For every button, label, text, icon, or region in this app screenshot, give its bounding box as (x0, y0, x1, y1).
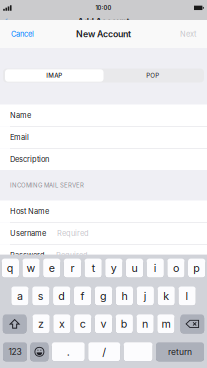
staticText: New Account (76, 29, 131, 39)
staticText: 123 (8, 347, 21, 357)
staticText: e (49, 262, 55, 274)
button[interactable]: b (116, 314, 133, 334)
button[interactable]: z (32, 314, 50, 334)
staticText: p (193, 262, 200, 274)
button[interactable]: q (2, 259, 19, 279)
button[interactable]: / (88, 342, 120, 362)
staticText: m (161, 317, 170, 330)
button[interactable]: Delete (181, 314, 204, 334)
staticText: c (80, 317, 86, 330)
button[interactable]: Cancel (0, 20, 42, 48)
button[interactable]: m (157, 314, 174, 334)
staticText: w (26, 262, 35, 274)
button[interactable]: w (22, 259, 40, 279)
button[interactable]: e (43, 259, 60, 279)
staticText: r (70, 262, 74, 274)
staticText: q (7, 262, 14, 274)
button[interactable]: Name (0, 104, 207, 126)
button[interactable]: Shift (3, 314, 26, 334)
staticText: IMAP (46, 72, 62, 79)
staticText: i (154, 262, 157, 274)
button[interactable]: Host Name (0, 200, 207, 222)
button[interactable]: p (188, 259, 205, 279)
staticText: . (67, 345, 70, 358)
button[interactable]: l (178, 286, 196, 307)
staticText: f (81, 289, 85, 302)
staticText: g (100, 289, 107, 302)
staticText: Name (10, 111, 31, 120)
staticText: Host Name (10, 207, 49, 216)
button[interactable]: Username (0, 222, 207, 244)
button[interactable]: v (95, 314, 112, 334)
staticText: t (92, 262, 95, 274)
button[interactable]: n (136, 314, 154, 334)
button[interactable]: k (158, 286, 175, 307)
button[interactable]: Emoji (30, 342, 48, 362)
staticText: z (38, 317, 44, 330)
button[interactable]: . (52, 342, 85, 362)
staticText: POP (146, 72, 159, 79)
button[interactable]: Description (0, 148, 207, 170)
button[interactable]: y (105, 259, 122, 279)
staticText: j (144, 289, 147, 302)
staticText: Email (10, 133, 29, 142)
staticText: u (131, 262, 137, 274)
staticText: d (58, 289, 65, 302)
button[interactable]: c (74, 314, 91, 334)
button[interactable]: t (84, 259, 102, 279)
button[interactable]: s (32, 286, 49, 307)
button[interactable]: Next (172, 20, 207, 48)
button[interactable]: return (156, 342, 204, 362)
button[interactable]: j (137, 286, 154, 307)
button[interactable]: POP (103, 69, 202, 82)
button[interactable]: Password (0, 244, 207, 266)
button[interactable]: g (95, 286, 112, 307)
button[interactable]: d (53, 286, 70, 307)
button[interactable]: a (11, 286, 28, 307)
button[interactable]: Email (0, 126, 207, 148)
staticText: Username (10, 229, 46, 238)
staticText: n (142, 317, 148, 330)
staticText: v (100, 317, 106, 330)
button[interactable]: r (64, 259, 81, 279)
staticText: Description (10, 155, 49, 164)
staticText: Add Account (77, 16, 129, 27)
staticText: / (102, 345, 106, 358)
button[interactable]: o (167, 259, 185, 279)
button[interactable]: f (74, 286, 91, 307)
staticText: Required (56, 251, 88, 260)
staticText: b (121, 317, 128, 330)
staticText: INCOMING MAIL SERVER (10, 182, 84, 189)
staticText: Password (10, 251, 45, 260)
staticText: return (168, 347, 192, 357)
button[interactable]: i (147, 259, 164, 279)
staticText: Cancel (11, 29, 34, 38)
staticText: y (111, 262, 117, 274)
button[interactable]: h (116, 286, 133, 307)
staticText: h (121, 289, 127, 302)
staticText: s (38, 289, 44, 302)
button[interactable]: u (126, 259, 143, 279)
staticText: k (163, 289, 169, 302)
staticText: o (173, 262, 179, 274)
staticText: Next (180, 29, 196, 38)
button[interactable]: IMAP (5, 69, 103, 82)
button[interactable]: 123 (3, 342, 27, 362)
staticText: Required (57, 229, 89, 238)
button[interactable]: x (53, 314, 71, 334)
staticText: l (186, 289, 189, 302)
staticText: 10:00 (95, 4, 111, 11)
staticText: x (59, 317, 65, 330)
staticText: a (17, 289, 23, 302)
button[interactable] (124, 342, 153, 362)
